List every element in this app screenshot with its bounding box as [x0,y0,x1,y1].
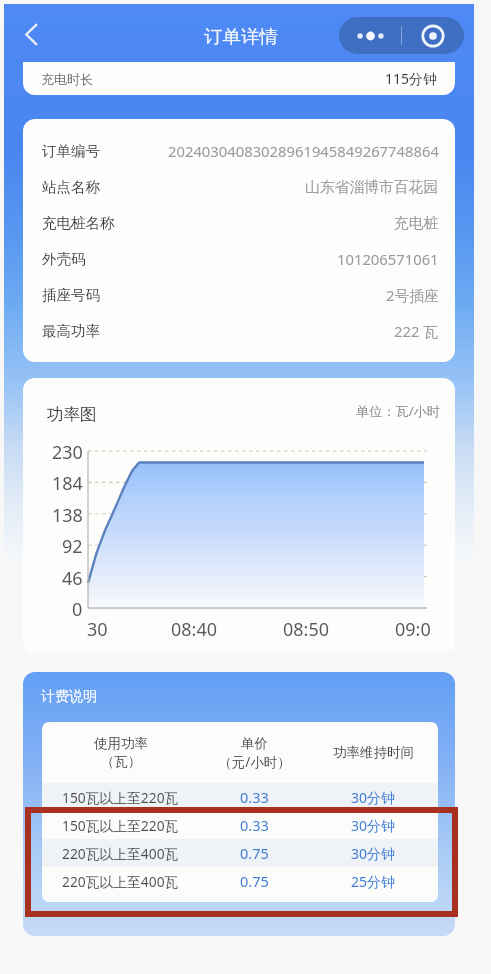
staticText: 220瓦以上至400瓦 [62,844,179,863]
button[interactable]: 充电时长 [23,62,455,95]
button[interactable]: 150瓦以上至220瓦 [42,811,438,839]
staticText: 外壳码 [42,250,86,268]
button[interactable]: Close [402,17,464,54]
staticText: 充电桩名称 [42,214,115,232]
button[interactable]: 站点名称 [42,169,439,205]
staticText: 0.33 [240,787,269,807]
staticText: 30分钟 [351,816,396,835]
staticText: 101206571061 [337,249,439,269]
button[interactable]: 150瓦以上至220瓦 [42,783,438,811]
button[interactable]: 外壳码 [42,241,439,277]
staticText: 150瓦以上至220瓦 [62,816,179,835]
staticText: 20240304083028961945849267748864 [168,141,439,161]
staticText: 单价 （元/小时） [218,735,291,771]
staticText: 功率图 [47,404,97,425]
staticText: 138 [52,503,83,525]
button[interactable]: 220瓦以上至400瓦 [42,867,438,895]
button[interactable]: 插座号码 [42,277,439,313]
staticText: 230 [52,440,83,462]
button[interactable]: 220瓦以上至400瓦 [42,839,438,867]
staticText: 150瓦以上至220瓦 [62,788,179,807]
staticText: 充电时长 [41,71,93,87]
button[interactable]: Back [12,15,50,53]
staticText: 08:40 [171,617,218,642]
staticText: 222 瓦 [394,321,439,341]
button[interactable]: More options [339,17,401,54]
staticText: 09:0 [395,617,431,642]
staticText: 0 [72,597,83,619]
staticText: 订单编号 [42,142,100,160]
staticText: 30 [87,617,108,642]
staticText: 92 [62,534,83,556]
staticText: 使用功率 （瓦） [94,735,148,770]
staticText: 0.75 [240,843,269,863]
staticText: 25分钟 [351,872,396,891]
staticText: 2号插座 [386,285,439,305]
staticText: 184 [52,471,83,493]
staticText: 功率维持时间 [333,744,414,761]
staticText: 最高功率 [42,322,100,340]
staticText: 46 [62,566,83,588]
staticText: 计费说明 [41,688,97,706]
staticText: 充电桩 [394,214,439,233]
button[interactable]: 最高功率 [42,313,439,349]
staticText: 0.33 [240,815,269,835]
staticText: 订单详情 [204,25,278,48]
staticText: 30分钟 [351,844,396,863]
staticText: 30分钟 [351,788,396,807]
staticText: 115分钟 [385,69,438,88]
button[interactable]: 充电桩名称 [42,205,439,241]
staticText: 单位：瓦/小时 [356,402,441,420]
button[interactable]: 订单编号 [42,133,439,169]
staticText: 0.75 [240,871,269,891]
staticText: 山东省淄博市百花园 [305,178,439,197]
staticText: 220瓦以上至400瓦 [62,872,179,891]
staticText: 插座号码 [42,286,100,304]
staticText: 站点名称 [42,178,100,196]
staticText: 08:50 [283,617,330,642]
